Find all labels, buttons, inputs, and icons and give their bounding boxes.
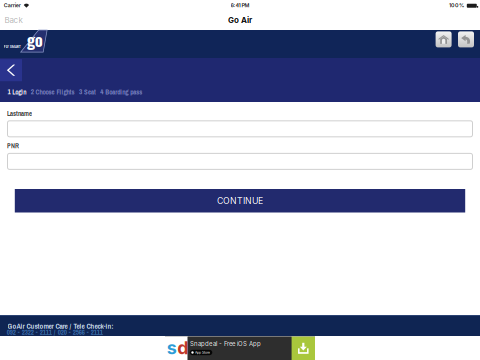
button[interactable]: CONTINUE [15, 189, 465, 212]
staticText: 1 [7, 87, 10, 97]
staticText: FLY SMART [4, 44, 21, 49]
staticText: 2 [31, 87, 34, 97]
staticText: Carrier [4, 2, 21, 9]
staticText: Login [12, 88, 26, 97]
button[interactable]: Back [0, 59, 22, 81]
staticText: Back [4, 15, 22, 25]
staticText: Choose Flights [36, 88, 75, 97]
staticText: PNR [7, 141, 19, 150]
staticText: 100% [449, 2, 464, 9]
staticText: s [167, 337, 177, 359]
staticText: d [177, 337, 188, 359]
staticText: 4 [100, 87, 103, 97]
button[interactable]: Home [436, 31, 452, 47]
button[interactable]: Back [0, 10, 30, 30]
staticText: 092 - 2322 - 2111 / 020 - 2566 - 2111 [7, 328, 103, 337]
staticText: Go Air [228, 15, 252, 25]
staticText: 6:41 PM [230, 2, 249, 9]
staticText: Boarding pass [105, 88, 142, 97]
staticText: App Store [195, 350, 210, 355]
staticText: go [27, 27, 43, 52]
staticText: Snapdeal - Free iOS App [190, 340, 261, 347]
staticText: 3 [79, 87, 82, 97]
button[interactable]: Back [458, 31, 474, 47]
staticText: GoAir Customer Care / Tele Check-in: [8, 321, 114, 331]
button[interactable]: s [165, 337, 315, 360]
staticText: Seat [84, 88, 96, 97]
staticText: CONTINUE [217, 195, 263, 206]
staticText: Lastname [7, 109, 32, 118]
